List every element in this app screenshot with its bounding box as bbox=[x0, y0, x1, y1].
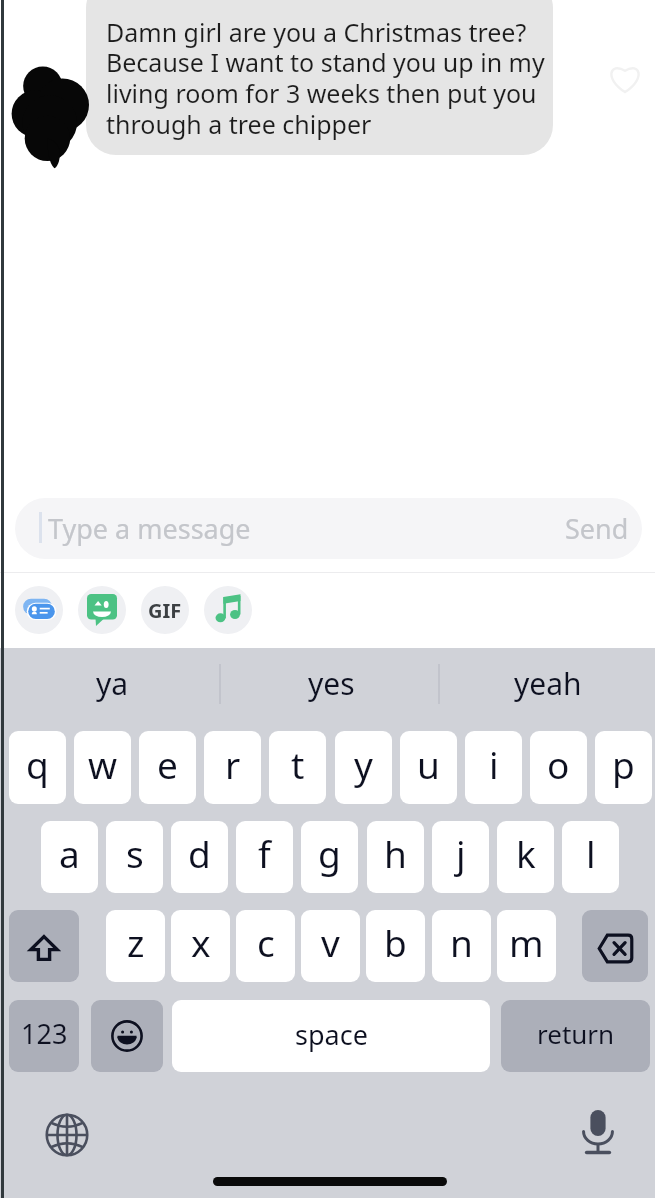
button[interactable]: Shift bbox=[9, 910, 79, 982]
staticText: r bbox=[225, 739, 241, 789]
button[interactable]: Music bbox=[204, 586, 252, 634]
staticText: h bbox=[384, 828, 407, 878]
button[interactable]: yeah bbox=[440, 648, 655, 718]
button[interactable]: w bbox=[74, 731, 131, 804]
staticText: c bbox=[257, 917, 275, 967]
staticText: Send bbox=[565, 510, 629, 547]
button[interactable]: GIF bbox=[141, 586, 189, 634]
button[interactable]: r bbox=[204, 731, 261, 804]
button[interactable]: 123 bbox=[9, 1000, 79, 1072]
staticText: j bbox=[456, 828, 466, 878]
staticText: i bbox=[489, 739, 499, 789]
button[interactable]: Contacts bbox=[15, 586, 63, 634]
button[interactable]: m bbox=[497, 910, 556, 982]
button[interactable]: return bbox=[501, 1000, 650, 1072]
button[interactable]: s bbox=[106, 821, 163, 893]
staticText: q bbox=[26, 739, 49, 789]
button[interactable]: e bbox=[139, 731, 196, 804]
button[interactable]: i bbox=[465, 731, 522, 804]
staticText: f bbox=[258, 828, 271, 878]
button[interactable]: z bbox=[106, 910, 165, 982]
button[interactable]: Stickers bbox=[78, 586, 126, 634]
button[interactable]: Type a message bbox=[15, 498, 642, 559]
staticText: Type a message bbox=[48, 510, 251, 547]
button[interactable]: space bbox=[172, 1000, 490, 1072]
staticText: ya bbox=[96, 663, 129, 704]
staticText: o bbox=[547, 739, 570, 789]
button[interactable]: x bbox=[171, 910, 230, 982]
button[interactable]: Like bbox=[603, 56, 647, 100]
staticText: GIF bbox=[148, 597, 182, 624]
button[interactable]: ya bbox=[3, 648, 222, 718]
staticText: p bbox=[612, 739, 635, 789]
staticText: d bbox=[188, 828, 211, 878]
button[interactable]: Voice input bbox=[573, 1108, 623, 1158]
staticText: b bbox=[384, 917, 407, 967]
staticText: u bbox=[417, 739, 440, 789]
staticText: v bbox=[321, 917, 340, 967]
staticText: w bbox=[88, 739, 118, 789]
staticText: Damn girl are you a Christmas tree? Beca… bbox=[106, 15, 545, 141]
staticText: g bbox=[318, 828, 341, 878]
button[interactable]: n bbox=[432, 910, 491, 982]
button[interactable]: a bbox=[41, 821, 98, 893]
staticText: a bbox=[59, 828, 80, 878]
button[interactable]: Backspace bbox=[582, 910, 648, 982]
button[interactable]: d bbox=[171, 821, 228, 893]
button[interactable]: Emoji bbox=[91, 1000, 163, 1072]
button[interactable]: Change keyboard bbox=[42, 1110, 92, 1160]
staticText: s bbox=[126, 828, 144, 878]
staticText: yes bbox=[308, 663, 355, 704]
button[interactable]: f bbox=[236, 821, 293, 893]
button[interactable]: k bbox=[497, 821, 554, 893]
button[interactable]: v bbox=[301, 910, 360, 982]
staticText: x bbox=[191, 917, 211, 967]
button[interactable]: g bbox=[301, 821, 358, 893]
staticText: e bbox=[157, 739, 178, 789]
button[interactable]: u bbox=[400, 731, 457, 804]
button[interactable]: p bbox=[595, 731, 652, 804]
button[interactable]: t bbox=[269, 731, 326, 804]
button[interactable]: c bbox=[236, 910, 295, 982]
button[interactable]: Damn girl are you a Christmas tree? Beca… bbox=[86, 0, 553, 155]
staticText: k bbox=[516, 828, 536, 878]
staticText: yeah bbox=[514, 663, 582, 704]
staticText: t bbox=[291, 739, 305, 789]
staticText: space bbox=[295, 1016, 368, 1053]
button[interactable]: yes bbox=[222, 648, 440, 718]
button[interactable]: b bbox=[366, 910, 425, 982]
staticText: l bbox=[586, 828, 596, 878]
staticText: return bbox=[537, 1016, 615, 1051]
staticText: m bbox=[509, 917, 544, 967]
button[interactable]: j bbox=[432, 821, 489, 893]
staticText: z bbox=[127, 917, 145, 967]
staticText: y bbox=[354, 739, 373, 789]
button[interactable]: q bbox=[9, 731, 66, 804]
button[interactable]: y bbox=[335, 731, 392, 804]
button[interactable]: l bbox=[562, 821, 619, 893]
button[interactable]: h bbox=[367, 821, 424, 893]
staticText: n bbox=[450, 917, 473, 967]
staticText: 123 bbox=[21, 1015, 68, 1052]
button[interactable]: o bbox=[530, 731, 587, 804]
